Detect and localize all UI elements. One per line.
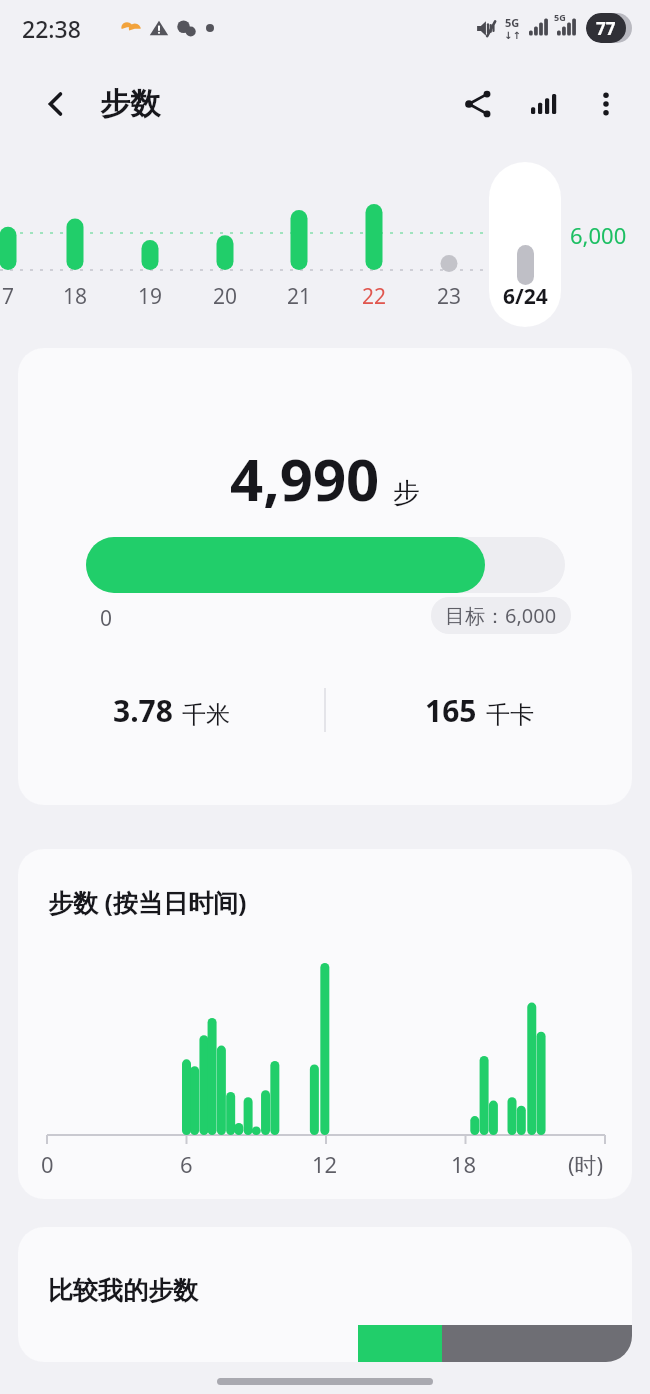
staticText: 6 bbox=[180, 1149, 193, 1179]
button[interactable]: 比较我的步数 bbox=[18, 1227, 632, 1362]
staticText: 22 bbox=[362, 282, 387, 311]
button[interactable]: 18 bbox=[45, 282, 105, 311]
staticText: 3.78 bbox=[113, 690, 173, 731]
staticText: 19 bbox=[138, 282, 163, 311]
button[interactable]: 20 bbox=[195, 282, 255, 311]
staticText: (时) bbox=[568, 1149, 604, 1179]
staticText: 6/24 bbox=[503, 282, 548, 311]
staticText: 千米 bbox=[182, 700, 230, 730]
staticText: 18 bbox=[451, 1149, 477, 1179]
staticText: 0 bbox=[41, 1149, 54, 1179]
button[interactable]: More options bbox=[580, 78, 632, 130]
button[interactable]: 6/24 bbox=[489, 162, 561, 327]
button[interactable]: 19 bbox=[120, 282, 180, 311]
button[interactable]: Trends bbox=[518, 78, 570, 130]
staticText: 12 bbox=[312, 1149, 338, 1179]
staticText: 5G bbox=[554, 11, 566, 23]
staticText: ↓↑ bbox=[504, 30, 521, 42]
button[interactable]: 23 bbox=[419, 282, 479, 311]
button[interactable]: 步数 (按当日时间) bbox=[18, 849, 632, 1199]
staticText: 4,990 bbox=[230, 439, 380, 518]
staticText: 目标：6,000 bbox=[445, 602, 557, 629]
staticText: 5G bbox=[505, 15, 520, 30]
staticText: 步数 (按当日时间) bbox=[48, 885, 247, 919]
staticText: 20 bbox=[213, 282, 238, 311]
staticText: 23 bbox=[437, 282, 462, 311]
staticText: 77 bbox=[596, 17, 616, 40]
staticText: 比较我的步数 bbox=[48, 1275, 198, 1306]
button[interactable]: 7 bbox=[0, 282, 38, 311]
staticText: 步数 bbox=[100, 85, 160, 123]
button[interactable]: 22 bbox=[344, 282, 404, 311]
button[interactable]: 21 bbox=[269, 282, 329, 311]
staticText: 0 bbox=[100, 604, 113, 633]
staticText: 22:38 bbox=[22, 13, 81, 44]
staticText: 165 bbox=[425, 690, 477, 731]
button[interactable]: Share bbox=[452, 78, 504, 130]
staticText: 18 bbox=[63, 282, 88, 311]
button[interactable]: 4,990 bbox=[18, 348, 632, 805]
button[interactable]: Back bbox=[34, 82, 78, 126]
staticText: 7 bbox=[2, 282, 15, 311]
staticText: 21 bbox=[287, 282, 312, 311]
staticText: 千卡 bbox=[486, 700, 534, 730]
staticText: 步 bbox=[393, 476, 420, 510]
staticText: 6,000 bbox=[570, 220, 627, 250]
